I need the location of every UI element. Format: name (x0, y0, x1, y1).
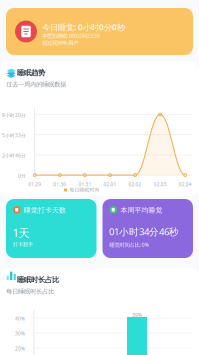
staticText: 每日睡眠时间 (69, 187, 99, 193)
staticText: 30% (15, 330, 25, 337)
staticText: 睡眠时长占比 (17, 275, 59, 284)
staticText: 本周平均睡觉 (120, 206, 162, 214)
staticText: 02.04 (179, 181, 192, 188)
staticText: 8小时20分 (2, 112, 26, 118)
staticText: 打卡新手 (13, 241, 33, 248)
button[interactable]: 今日睡觉: 0小时0分0秒 (6, 8, 193, 55)
staticText: 01.31 (78, 181, 91, 188)
staticText: 过去一周内的睡眠数据 (6, 80, 66, 88)
staticText: 01小时34分46秒 (109, 225, 179, 238)
staticText: 睡觉时间占比: 0% (109, 241, 148, 248)
button[interactable]: 睡觉打卡天数 (6, 199, 96, 258)
staticText: 本墅扒睡眠: 09:02到23:59 (42, 32, 100, 39)
staticText: 睡眠趋势 (17, 68, 45, 77)
staticText: 01.30 (53, 181, 66, 188)
staticText: 02.03 (154, 181, 167, 188)
staticText: 超过死99%用户 (42, 39, 78, 46)
staticText: 睡觉打卡天数 (24, 206, 66, 214)
staticText: 20% (15, 345, 25, 352)
staticText: 40% (15, 315, 25, 322)
staticText: 39% (132, 311, 142, 318)
staticText: 今日睡觉: 0小时0分0秒 (42, 21, 125, 33)
staticText: 0分 (18, 172, 26, 179)
staticText: 1天 (12, 225, 29, 240)
staticText: 每日睡眠时长占比 (6, 287, 54, 295)
staticText: 5小时33分 (2, 132, 26, 139)
button[interactable]: 本周平均睡觉 (102, 199, 193, 258)
staticText: 02.01 (103, 181, 116, 188)
staticText: 2小时46分 (2, 152, 26, 159)
staticText: 01.29 (28, 181, 41, 188)
staticText: 02.02 (129, 181, 142, 188)
